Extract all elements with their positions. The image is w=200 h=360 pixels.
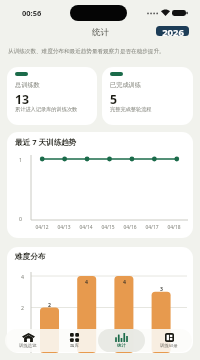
staticText: 统计 <box>92 27 109 38</box>
staticText: 04/16 <box>119 224 141 231</box>
button[interactable]: 总训练数 <box>7 67 97 125</box>
button[interactable]: 已完成训练 <box>102 67 193 125</box>
button[interactable]: 2026 <box>156 26 189 36</box>
staticText: 2026 <box>162 26 184 36</box>
staticText: 04/13 <box>53 224 75 231</box>
button[interactable]: 训练总览 <box>5 329 51 352</box>
staticText: 04/15 <box>97 224 119 231</box>
staticText: 0 <box>19 215 22 222</box>
staticText: 2 <box>48 301 51 308</box>
staticText: 4 <box>123 278 126 285</box>
staticText: 04/18 <box>163 224 185 231</box>
staticText: 从训练次数、难度分布和最近趋势量看观察力是否在稳步提升。 <box>8 48 200 55</box>
staticText: 完整完成整轮流程 <box>110 106 152 113</box>
button[interactable]: 训练记录 <box>145 329 192 352</box>
staticText: 3 <box>160 285 163 292</box>
staticText: 4 <box>21 273 24 280</box>
button[interactable]: 统计 <box>98 329 145 352</box>
staticText: 04/17 <box>141 224 163 231</box>
staticText: 总训练数 <box>15 81 40 89</box>
staticText: 题库 <box>70 343 79 349</box>
staticText: 2 <box>21 304 24 311</box>
staticText: 累计进入记录库的训练次数 <box>15 106 78 113</box>
staticText: 已完成训练 <box>110 81 141 89</box>
staticText: 04/12 <box>31 224 53 231</box>
staticText: 1 <box>19 156 22 163</box>
staticText: 训练记录 <box>160 343 178 349</box>
staticText: 5 <box>110 91 118 108</box>
staticText: 最近 7 天训练趋势 <box>15 137 77 147</box>
staticText: 难度分布 <box>15 252 46 262</box>
button[interactable]: 题库 <box>51 329 98 352</box>
staticText: 4 <box>85 278 88 285</box>
staticText: 00:56 <box>22 8 42 18</box>
staticText: 04/14 <box>75 224 97 231</box>
staticText: 统计 <box>117 343 126 349</box>
button[interactable]: 最近 7 天训练趋势 <box>7 132 193 238</box>
staticText: 训练总览 <box>19 343 37 349</box>
button[interactable]: 难度分布 <box>7 247 193 353</box>
staticText: 13 <box>15 91 30 108</box>
